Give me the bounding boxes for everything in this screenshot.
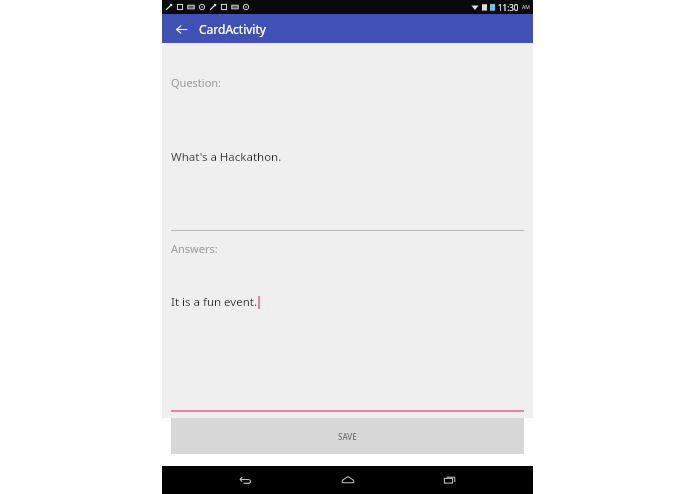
staticText: 11:30 <box>498 2 519 13</box>
button[interactable]: Recent apps <box>430 466 470 494</box>
staticText: Answers: <box>171 241 218 256</box>
staticText: SAVE <box>338 431 357 442</box>
staticText: AM <box>522 4 530 11</box>
button[interactable]: It is a fun event. <box>171 256 524 412</box>
button[interactable]: Back <box>225 466 265 494</box>
button[interactable]: Back <box>170 18 192 40</box>
button[interactable]: What's a Hackathon. <box>171 90 524 231</box>
button[interactable]: Home <box>328 466 368 494</box>
staticText: It is a fun event. <box>171 294 258 310</box>
staticText: Question: <box>171 75 222 90</box>
button[interactable]: SAVE <box>171 418 524 454</box>
staticText: What's a Hackathon. <box>171 149 282 165</box>
staticText: CardActivity <box>199 21 266 37</box>
